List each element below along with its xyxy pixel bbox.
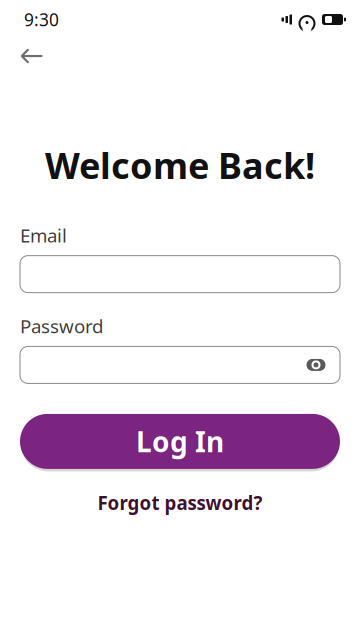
button[interactable]: Log In <box>15 411 345 471</box>
staticText: Forgot password? <box>97 490 262 515</box>
button[interactable]: Back <box>10 39 54 73</box>
staticText: Password <box>20 314 103 338</box>
staticText: Log In <box>136 423 224 460</box>
staticText: 9:30 <box>24 8 59 31</box>
button[interactable] <box>20 256 340 293</box>
button[interactable]: Forgot password? <box>87 485 272 520</box>
staticText: Welcome Back! <box>45 141 315 189</box>
button[interactable] <box>20 346 340 383</box>
staticText: Email <box>20 223 67 248</box>
